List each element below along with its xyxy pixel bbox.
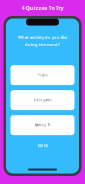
button[interactable]: Watching TV [10, 115, 74, 135]
button[interactable]: Video games [10, 90, 74, 110]
staticText: 4 Quizzes To Try [21, 4, 63, 12]
staticText: Puzzles [37, 73, 47, 77]
staticText: 10/10 [37, 143, 47, 148]
staticText: Watching TV [34, 123, 50, 127]
staticText: doing the most? [25, 42, 60, 47]
staticText: What activity do you like [18, 34, 67, 40]
button[interactable]: Puzzles [10, 65, 74, 85]
staticText: Video games [33, 98, 51, 102]
